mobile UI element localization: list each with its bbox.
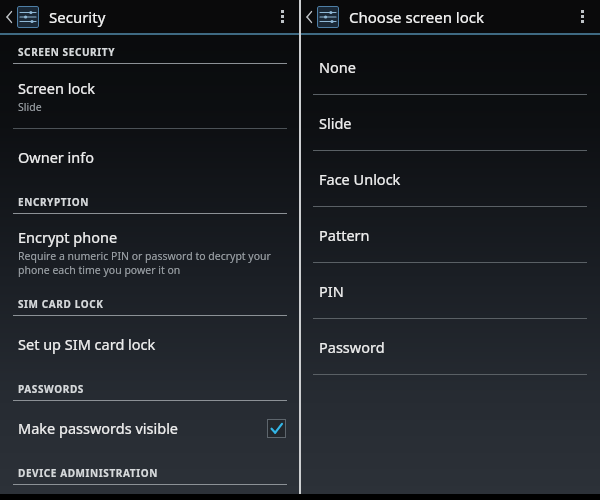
- button[interactable]: PIN: [300, 263, 600, 319]
- staticText: DEVICE ADMINISTRATION: [18, 466, 158, 480]
- staticText: Make passwords visible: [18, 418, 179, 438]
- button[interactable]: Encrypt phone: [0, 214, 300, 287]
- button[interactable]: Set up SIM card lock: [0, 316, 300, 370]
- button[interactable]: Face Unlock: [300, 151, 600, 207]
- staticText: Owner info: [18, 147, 95, 167]
- staticText: Choose screen lock: [349, 7, 484, 27]
- staticText: PASSWORDS: [18, 382, 84, 396]
- button[interactable]: Make passwords visible: [0, 401, 300, 454]
- staticText: Set up SIM card lock: [18, 334, 156, 354]
- button[interactable]: Pattern: [300, 207, 600, 263]
- button[interactable]: Navigate up: [0, 0, 41, 33]
- button[interactable]: None: [300, 39, 600, 95]
- button[interactable]: Device administrators: [0, 485, 300, 494]
- staticText: Require a numeric PIN or password to dec…: [18, 249, 271, 277]
- staticText: Pattern: [319, 225, 370, 245]
- staticText: PIN: [319, 281, 344, 301]
- staticText: Encrypt phone: [18, 227, 118, 247]
- staticText: Face Unlock: [319, 169, 401, 189]
- button[interactable]: Screen lock: [0, 64, 300, 128]
- staticText: Security: [49, 7, 106, 27]
- staticText: ENCRYPTION: [18, 195, 89, 209]
- button[interactable]: More options: [268, 0, 296, 33]
- button[interactable]: Navigate up: [300, 0, 341, 33]
- button[interactable]: Owner info: [0, 129, 300, 183]
- staticText: Slide: [18, 100, 42, 114]
- staticText: Password: [319, 337, 385, 357]
- button[interactable]: More options: [568, 0, 596, 33]
- staticText: SIM CARD LOCK: [18, 297, 104, 311]
- staticText: Screen lock: [18, 78, 95, 98]
- staticText: SCREEN SECURITY: [18, 45, 115, 59]
- button[interactable]: Password: [300, 319, 600, 375]
- staticText: Slide: [319, 113, 352, 133]
- staticText: None: [319, 57, 356, 77]
- button[interactable]: Slide: [300, 95, 600, 151]
